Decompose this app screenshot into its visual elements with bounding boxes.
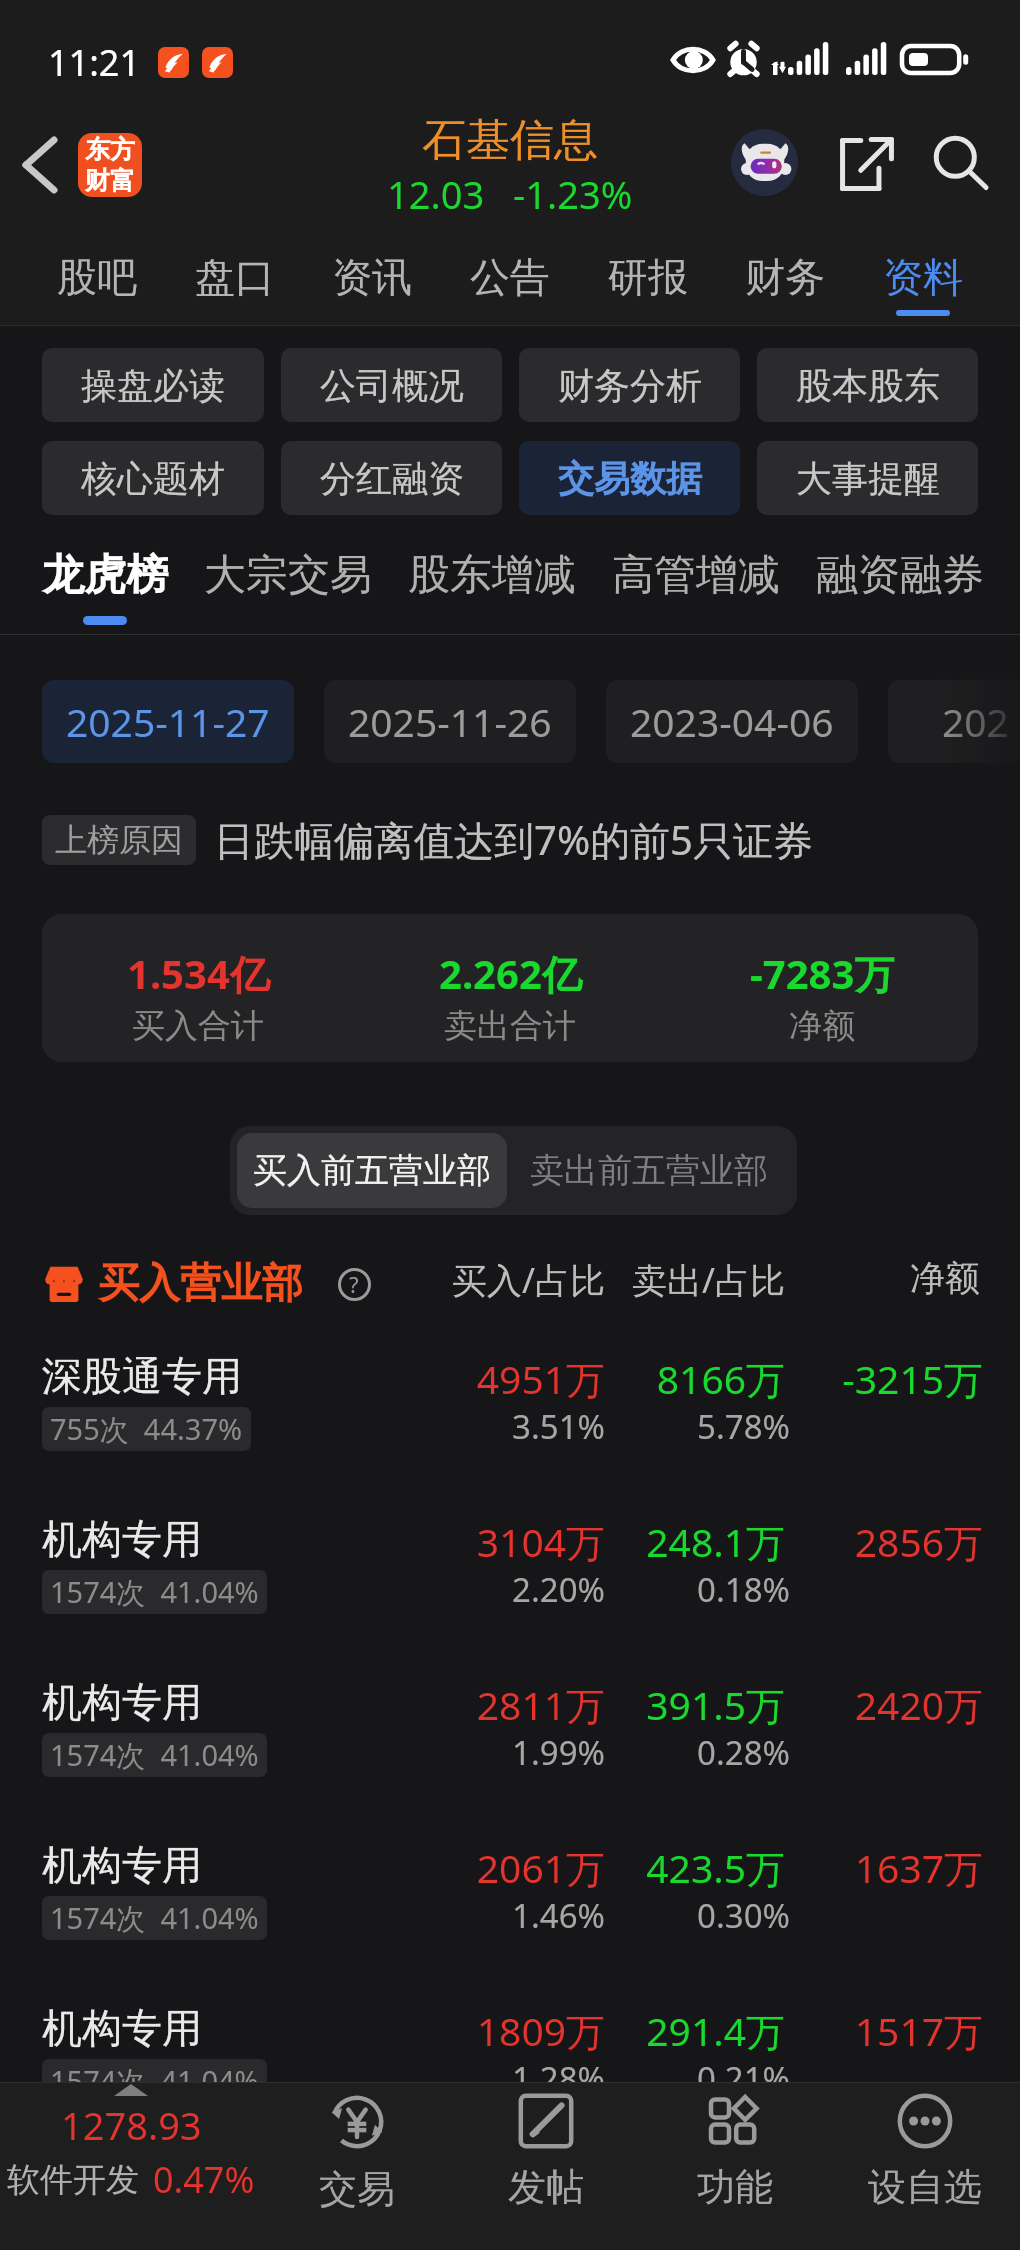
staticText: 0.21% bbox=[590, 2056, 790, 2101]
staticText: 机构专用 bbox=[42, 1840, 202, 1890]
button[interactable]: 财务 bbox=[737, 252, 833, 316]
button[interactable]: 机构专用 bbox=[0, 1837, 1020, 1987]
staticText: 2025-11-27 bbox=[66, 695, 270, 748]
staticText: 2023-04-06 bbox=[630, 695, 834, 748]
staticText: 1574次 41.04% bbox=[50, 1735, 259, 1775]
staticText: 1.28% bbox=[345, 2056, 605, 2101]
staticText: 融资融券 bbox=[816, 549, 984, 602]
button[interactable]: 盘口 bbox=[187, 252, 283, 316]
staticText: 1809万 bbox=[345, 2004, 605, 2057]
staticText: 设自选 bbox=[868, 2163, 982, 2211]
button[interactable]: 公司概况 bbox=[281, 348, 502, 422]
staticText: ? bbox=[349, 1269, 359, 1299]
staticText: 龙虎榜 bbox=[42, 549, 168, 602]
button[interactable]: 机构专用 bbox=[0, 1674, 1020, 1824]
staticText: 资讯 bbox=[332, 252, 412, 302]
button[interactable]: 分红融资 bbox=[281, 441, 502, 515]
button[interactable]: Search bbox=[920, 122, 1004, 206]
staticText: 上榜原因 bbox=[55, 820, 183, 860]
button[interactable]: 股本股东 bbox=[757, 348, 978, 422]
staticText: 2420万 bbox=[763, 1678, 983, 1731]
staticText: 248.1万 bbox=[565, 1515, 785, 1568]
button[interactable]: 发帖 bbox=[451, 2083, 640, 2211]
staticText: 3104万 bbox=[345, 1515, 605, 1568]
button[interactable]: 2025-11-27 bbox=[42, 680, 294, 763]
button[interactable]: 财务分析 bbox=[519, 348, 740, 422]
staticText: 机构专用 bbox=[42, 2003, 202, 2053]
button[interactable]: 大事提醒 bbox=[757, 441, 978, 515]
button[interactable]: 交易数据 bbox=[519, 441, 740, 515]
staticText: 财务 bbox=[745, 252, 825, 302]
staticText: 2856万 bbox=[763, 1515, 983, 1568]
staticText: 发帖 bbox=[508, 2163, 584, 2211]
staticText: -3215万 bbox=[763, 1352, 983, 1405]
staticText: 日跌幅偏离值达到7%的前5只证券 bbox=[214, 812, 813, 867]
button[interactable]: 大宗交易 bbox=[198, 549, 378, 625]
button[interactable]: 1278.93 bbox=[0, 2083, 262, 2204]
staticText: 1637万 bbox=[763, 1841, 983, 1894]
button[interactable]: Share bbox=[825, 122, 909, 206]
button[interactable]: 功能 bbox=[640, 2083, 830, 2211]
staticText: 1517万 bbox=[763, 2004, 983, 2057]
button[interactable]: 公告 bbox=[462, 252, 558, 316]
staticText: 1.99% bbox=[345, 1730, 605, 1775]
button[interactable]: 机构专用 bbox=[0, 2000, 1020, 2150]
button[interactable]: 核心题材 bbox=[42, 441, 264, 515]
button[interactable]: AI assistant bbox=[722, 120, 806, 204]
button[interactable]: 资料 bbox=[875, 252, 971, 316]
staticText: 3.51% bbox=[345, 1404, 605, 1449]
staticText: 0.28% bbox=[590, 1730, 790, 1775]
button[interactable]: 融资融券 bbox=[810, 549, 990, 625]
staticText: 1574次 41.04% bbox=[50, 1898, 259, 1938]
staticText: 8166万 bbox=[565, 1352, 785, 1405]
staticText: 公司概况 bbox=[320, 363, 464, 408]
button[interactable]: 2025-11-26 bbox=[324, 680, 576, 763]
staticText: 净额 bbox=[820, 1256, 980, 1300]
button[interactable]: 龙虎榜 bbox=[36, 549, 174, 625]
button[interactable]: Help bbox=[337, 1267, 371, 1301]
staticText: 1574次 41.04% bbox=[50, 2061, 259, 2101]
button[interactable]: 机构专用 bbox=[0, 1511, 1020, 1661]
staticText: 机构专用 bbox=[42, 1677, 202, 1727]
button[interactable]: 买入前五营业部 bbox=[237, 1133, 507, 1208]
button[interactable]: 高管增减 bbox=[606, 549, 786, 625]
button[interactable]: 操盘必读 bbox=[42, 348, 264, 422]
staticText: 研报 bbox=[608, 252, 688, 302]
staticText: 交易 bbox=[319, 2165, 395, 2213]
staticText: 软件开发 bbox=[7, 2159, 139, 2201]
staticText: 股东增减 bbox=[408, 549, 576, 602]
button[interactable]: 股东增减 bbox=[402, 549, 582, 625]
staticText: 2025-11-26 bbox=[348, 695, 552, 748]
button[interactable]: 202 bbox=[888, 680, 1020, 763]
staticText: 深股通专用 bbox=[42, 1351, 242, 1401]
staticText: 盘口 bbox=[195, 252, 275, 302]
staticText: 净额 bbox=[789, 1005, 855, 1047]
staticText: 5.78% bbox=[590, 1404, 790, 1449]
staticText: 202 bbox=[942, 695, 1009, 748]
staticText: 755次 44.37% bbox=[50, 1409, 243, 1449]
staticText: 买入营业部 bbox=[98, 1258, 303, 1310]
button[interactable]: 交易 bbox=[262, 2083, 451, 2213]
staticText: 买入合计 bbox=[132, 1005, 264, 1047]
staticText: 财务分析 bbox=[558, 363, 702, 408]
staticText: 公告 bbox=[470, 252, 550, 302]
button[interactable]: 2023-04-06 bbox=[606, 680, 858, 763]
button[interactable]: 股吧 bbox=[49, 252, 145, 316]
staticText: 0.47% bbox=[153, 2155, 255, 2204]
staticText: 0.18% bbox=[590, 1567, 790, 1612]
staticText: 12.03 bbox=[387, 168, 485, 220]
staticText: 391.5万 bbox=[565, 1678, 785, 1731]
staticText: 大事提醒 bbox=[796, 456, 940, 501]
staticText: 卖出/占比 bbox=[585, 1256, 785, 1304]
button[interactable]: 深股通专用 bbox=[0, 1348, 1020, 1498]
staticText: 0.30% bbox=[590, 1893, 790, 1938]
staticText: 功能 bbox=[697, 2163, 773, 2211]
staticText: 1.46% bbox=[345, 1893, 605, 1938]
button[interactable]: 资讯 bbox=[324, 252, 420, 316]
button[interactable]: 研报 bbox=[600, 252, 696, 316]
staticText: 交易数据 bbox=[558, 456, 702, 501]
button[interactable]: 卖出前五营业部 bbox=[507, 1133, 790, 1208]
button[interactable]: 设自选 bbox=[830, 2083, 1020, 2211]
button[interactable]: Back bbox=[0, 125, 80, 205]
button[interactable]: East Money bbox=[78, 133, 142, 197]
